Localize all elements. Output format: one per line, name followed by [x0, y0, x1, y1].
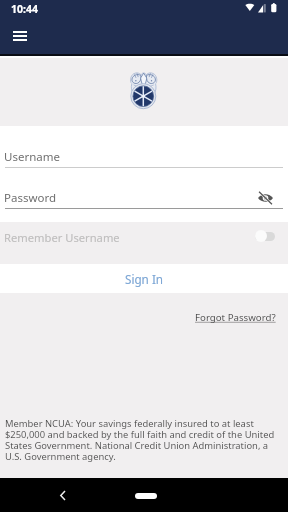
button[interactable]: Home [123, 483, 169, 507]
button[interactable]: Open navigation menu [5, 27, 35, 44]
button[interactable]: Username [5, 142, 283, 168]
staticText: Member NCUA: Your savings federally insu… [5, 417, 277, 463]
staticText: 10:44 [11, 2, 38, 16]
staticText: Username [4, 149, 60, 165]
staticText: Remember Username [4, 230, 120, 245]
staticText: Password [4, 190, 57, 206]
button[interactable]: Forgot Password? [187, 303, 284, 332]
staticText: Sign In [125, 271, 164, 287]
button[interactable]: Password [5, 183, 283, 209]
button[interactable]: Back [52, 485, 72, 505]
button[interactable]: Show password [253, 186, 277, 210]
staticText: Forgot Password? [195, 311, 276, 324]
button[interactable]: Remember Username [0, 222, 288, 264]
button[interactable]: Sign In [0, 264, 288, 293]
